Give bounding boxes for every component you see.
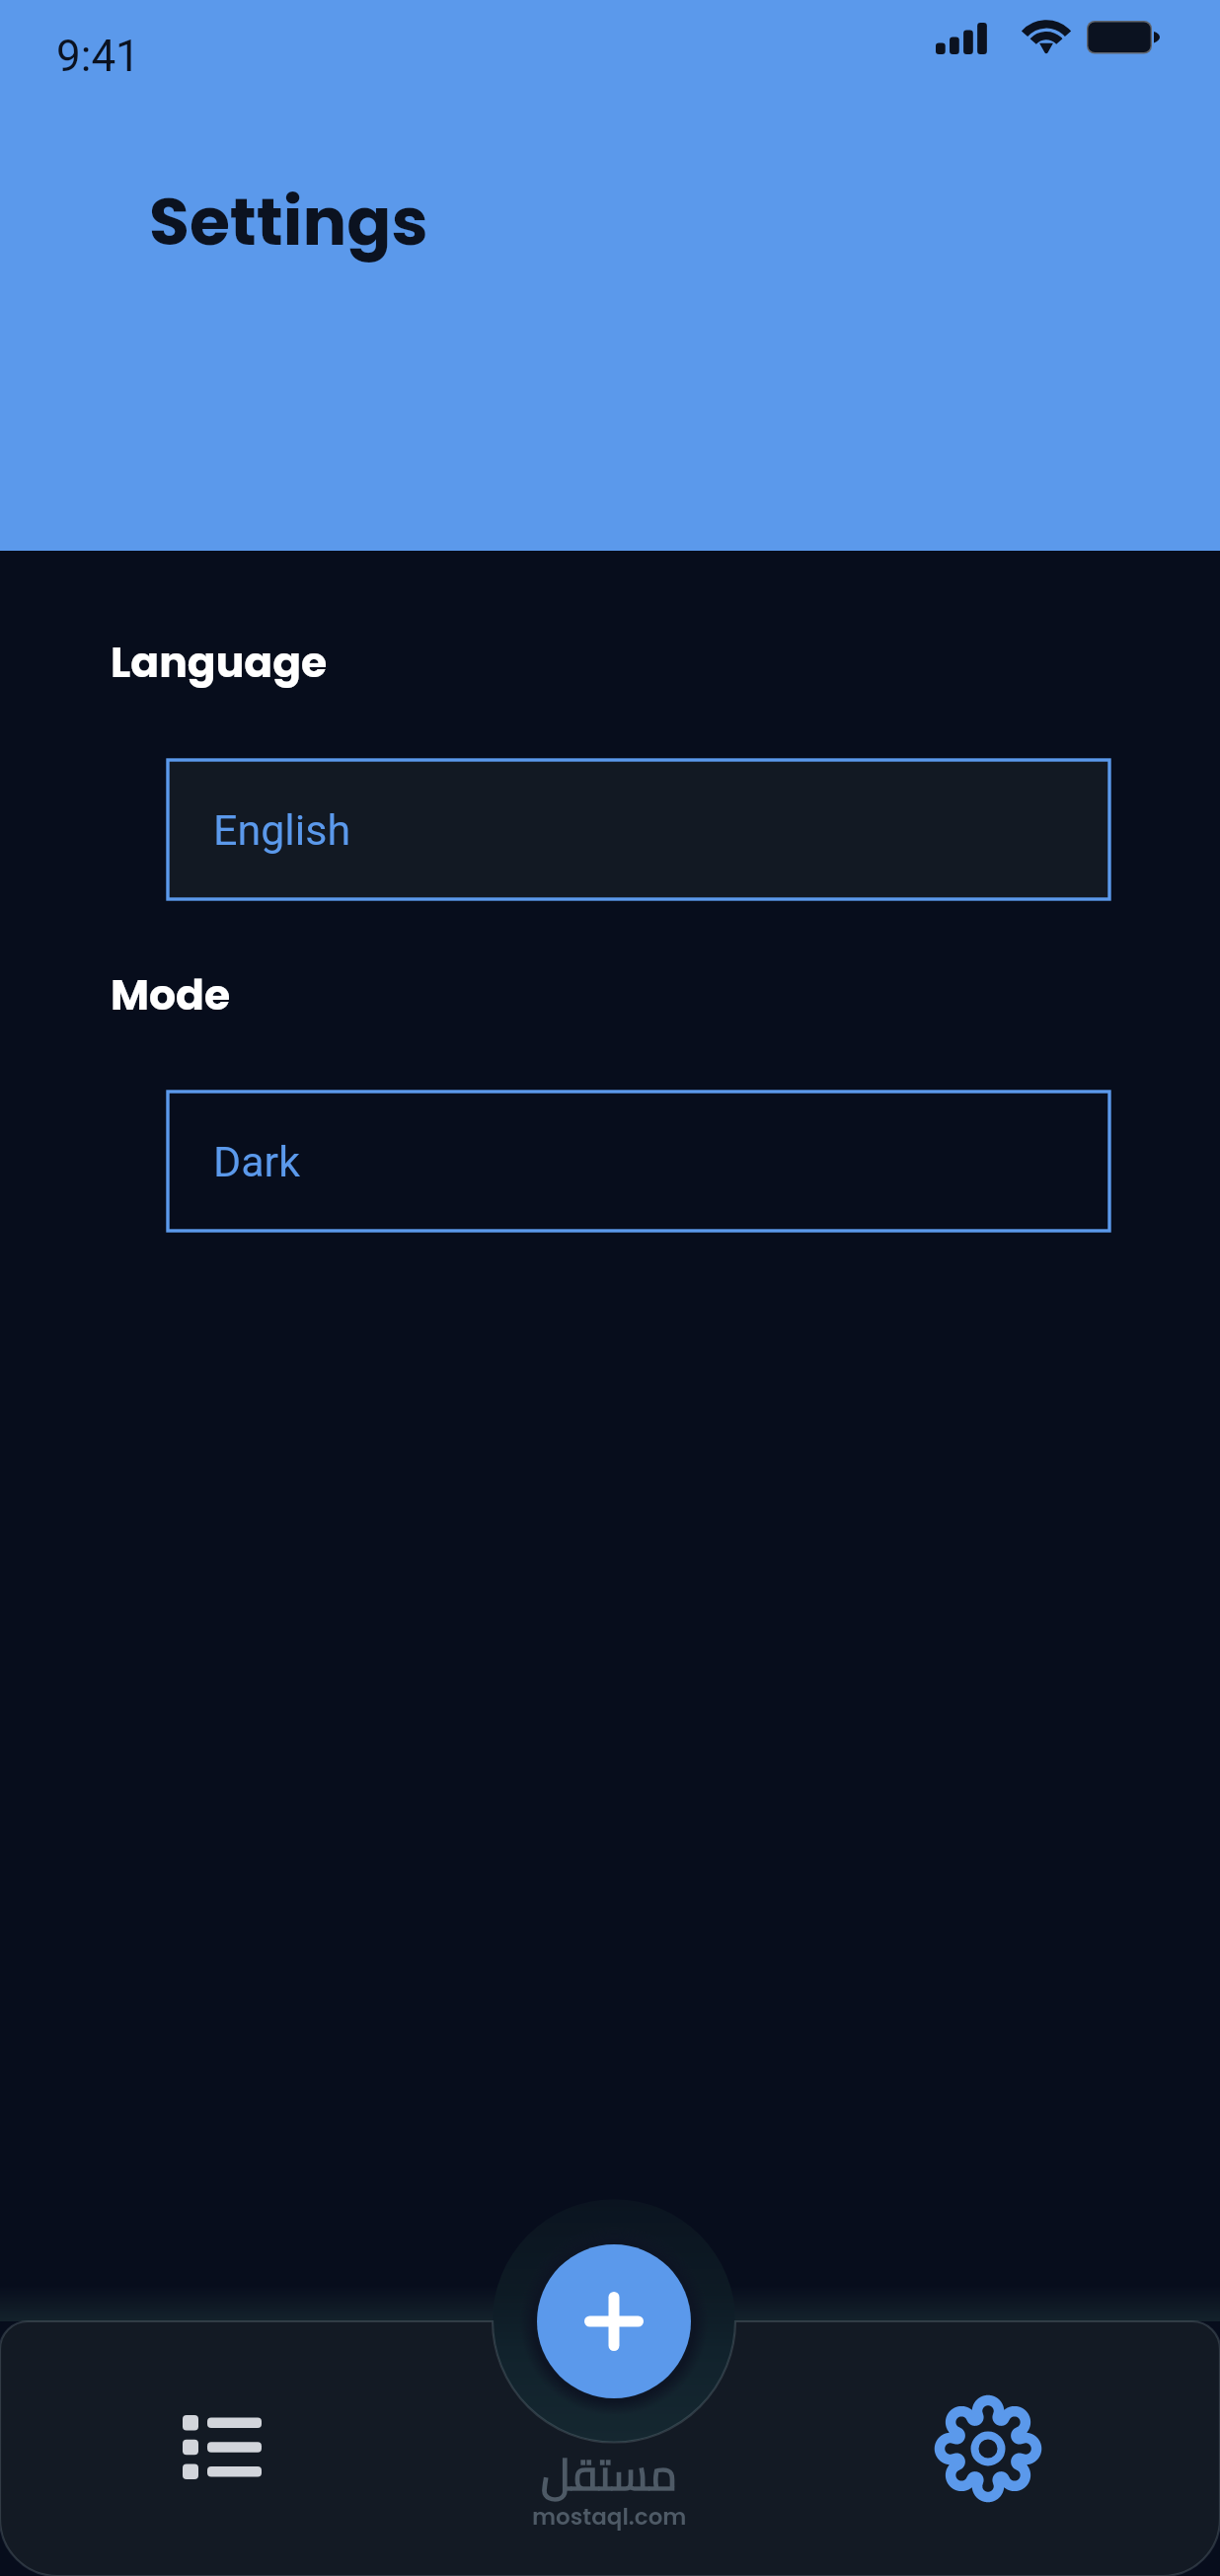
staticText: English <box>213 805 351 855</box>
staticText: مستقل <box>541 2434 677 2515</box>
staticText: mostaql.com <box>532 2501 687 2533</box>
staticText: 9:41 <box>56 31 140 82</box>
staticText: Mode <box>111 965 231 1023</box>
button[interactable]: Settings <box>840 2362 1136 2535</box>
staticText: Dark <box>213 1137 300 1186</box>
button[interactable]: Dark <box>168 1092 1109 1231</box>
button[interactable]: Add <box>537 2244 691 2398</box>
staticText: Settings <box>149 176 428 267</box>
staticText: Language <box>111 633 328 691</box>
button[interactable]: List <box>74 2361 369 2534</box>
button[interactable]: English <box>168 760 1109 899</box>
